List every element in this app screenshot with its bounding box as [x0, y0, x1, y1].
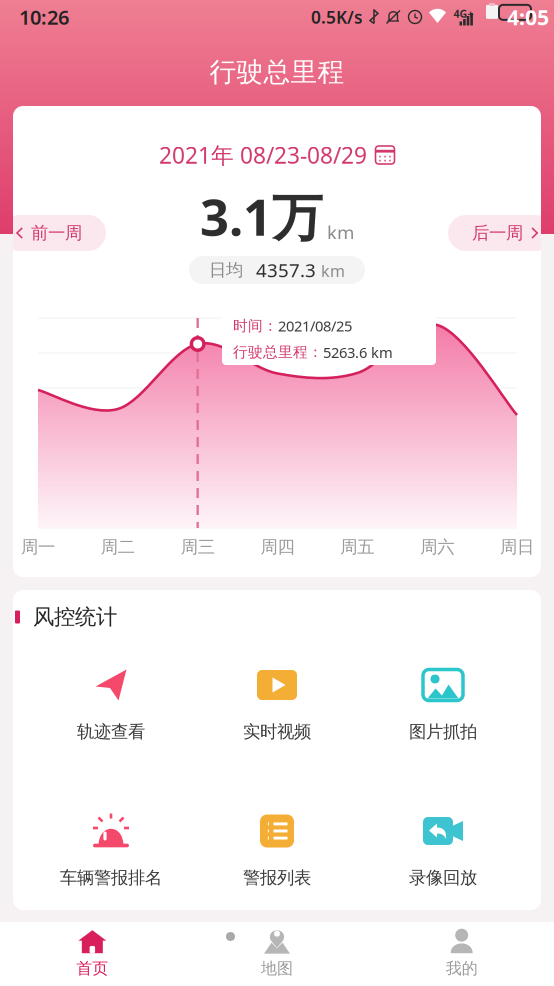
- staticText: 警报列表: [243, 867, 311, 888]
- staticText: 周五: [340, 536, 374, 558]
- staticText: 风控统计: [33, 604, 117, 630]
- button[interactable]: 录像回放: [360, 813, 526, 888]
- staticText: km: [321, 260, 345, 281]
- staticText: 4G+: [453, 6, 473, 21]
- staticText: 0.5K/s: [311, 5, 363, 28]
- staticText: 周二: [101, 536, 135, 558]
- staticText: 行驶总里程: [209, 56, 344, 88]
- staticText: 4:05: [507, 3, 549, 31]
- staticText: 轨迹查看: [77, 721, 145, 742]
- staticText: 时间：: [233, 317, 278, 335]
- staticText: 实时视频: [243, 721, 311, 742]
- button[interactable]: 图片抓拍: [360, 667, 526, 742]
- staticText: 车辆警报排名: [60, 867, 162, 888]
- staticText: 10:26: [19, 4, 69, 30]
- staticText: 周六: [420, 536, 454, 558]
- button[interactable]: Notification badge: [226, 932, 235, 941]
- staticText: 周四: [260, 536, 294, 558]
- staticText: 地图: [261, 959, 293, 978]
- staticText: 周一: [21, 536, 55, 558]
- button[interactable]: 前一周: [1, 215, 106, 251]
- staticText: 后一周: [472, 222, 523, 244]
- staticText: 录像回放: [409, 867, 477, 888]
- button[interactable]: 车辆警报排名: [28, 813, 194, 888]
- button[interactable]: 地图: [185, 921, 369, 986]
- staticText: 日均: [209, 259, 243, 281]
- button[interactable]: 轨迹查看: [28, 667, 194, 742]
- staticText: 5263.6 km: [323, 342, 393, 362]
- staticText: km: [327, 220, 354, 245]
- staticText: 前一周: [31, 222, 82, 244]
- button[interactable]: 警报列表: [194, 813, 360, 888]
- staticText: 我的: [446, 959, 478, 978]
- button[interactable]: 后一周: [448, 215, 553, 251]
- staticText: 周三: [181, 536, 215, 558]
- staticText: 周日: [500, 536, 534, 558]
- staticText: 2021/08/25: [278, 316, 352, 335]
- button[interactable]: 我的: [369, 921, 554, 986]
- staticText: 行驶总里程：: [233, 343, 323, 361]
- staticText: 图片抓拍: [409, 721, 477, 742]
- staticText: 3.1万: [200, 182, 323, 250]
- staticText: 2021年 08/23-08/29: [159, 140, 367, 170]
- staticText: 首页: [76, 959, 108, 978]
- button[interactable]: 实时视频: [194, 667, 360, 742]
- button[interactable]: 首页: [0, 921, 185, 986]
- staticText: 4357.3: [256, 258, 316, 282]
